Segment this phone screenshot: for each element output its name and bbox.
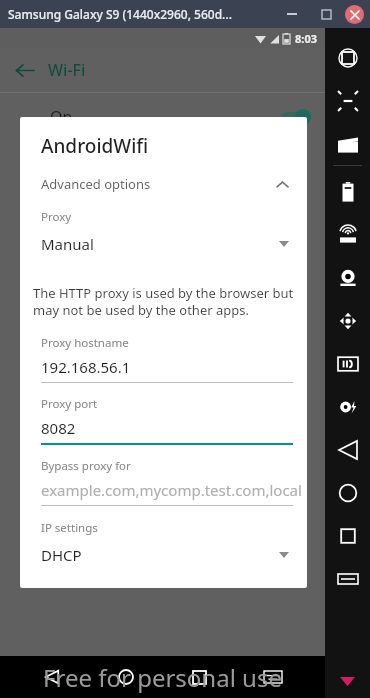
button[interactable]: Record screen [325,122,370,165]
staticText: Manual [41,234,94,254]
staticText: Advanced options [41,175,151,193]
button[interactable]: Back [30,656,74,698]
button[interactable]: Battery [325,170,370,213]
button[interactable]: Snapshot [325,385,370,428]
button[interactable]: Proxy hostname [20,335,307,383]
staticText: On [50,106,73,128]
button[interactable]: Recent apps [177,656,221,698]
button[interactable]: Rotate [325,36,370,79]
staticText: Proxy port [41,396,98,412]
button[interactable]: Device ID [325,342,370,385]
staticText: IP settings [41,520,98,536]
button[interactable]: Back [0,48,48,92]
button[interactable]: Home [104,656,148,698]
button[interactable]: Camera [325,256,370,299]
staticText: Samsung Galaxy S9 (1440x2960, 560d... [8,6,232,22]
staticText: DHCP [41,545,82,565]
staticText: Proxy hostname [41,335,129,351]
button[interactable]: Back [325,428,370,471]
button[interactable]: Proxy port [20,396,307,445]
button[interactable]: More [325,664,370,698]
button[interactable]: Home [325,471,370,514]
staticText: example.com,mycomp.test.com,localho [41,480,303,500]
button[interactable]: On [0,93,325,141]
button[interactable]: Bypass proxy for [20,458,307,506]
staticText: The HTTP proxy is used by the browser bu… [33,284,299,319]
staticText: 8:03 [295,31,317,46]
button[interactable]: Keyboard [251,656,295,698]
button[interactable]: Manual [20,232,307,256]
staticText: AndroidWifi [41,133,149,159]
button[interactable]: Minimize [281,3,303,25]
button[interactable]: Menu [325,557,370,600]
button[interactable]: Restore [315,3,337,25]
button[interactable]: GPS location [325,213,370,256]
staticText: Wi-Fi [48,59,86,81]
button[interactable]: Advanced options [20,171,307,197]
staticText: Bypass proxy for [41,458,131,474]
button[interactable]: Zoom 1:1 [325,79,370,122]
button[interactable]: Close [345,5,364,24]
button[interactable]: Overview [325,514,370,557]
staticText: Proxy [41,209,72,225]
button[interactable]: D-pad [325,299,370,342]
staticText: Free for personal use [43,661,282,694]
button[interactable]: DHCP [20,543,307,567]
staticText: 8082 [41,418,76,438]
staticText: 192.168.56.1 [41,357,131,377]
